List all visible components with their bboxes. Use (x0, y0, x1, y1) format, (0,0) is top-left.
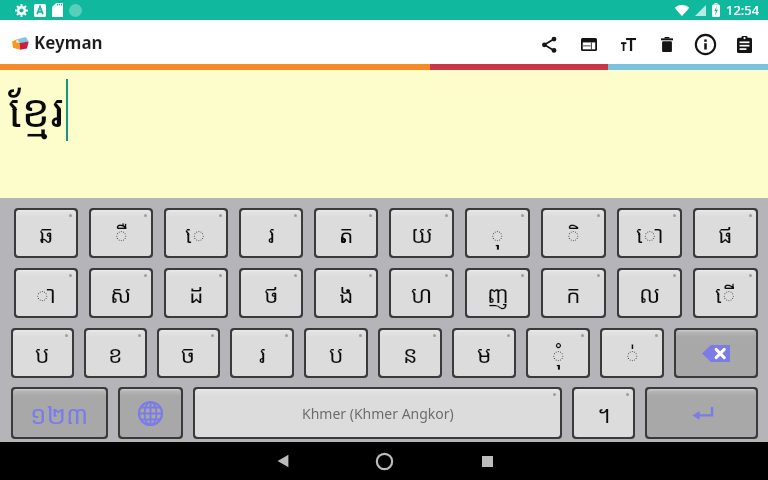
button[interactable]: រ (232, 330, 292, 376)
staticText: Keyman (34, 31, 103, 54)
staticText: Khmer (Khmer Angkor) (302, 404, 454, 423)
staticText: ម (477, 338, 492, 369)
staticText: ឺ (114, 218, 129, 249)
button[interactable]: ង (316, 270, 376, 316)
staticText: ដ (189, 278, 204, 309)
button[interactable]: ន (380, 330, 440, 376)
staticText: េី (715, 278, 737, 309)
button[interactable]: ត (316, 210, 376, 256)
button[interactable]: Back (263, 442, 303, 480)
staticText: ង (339, 278, 354, 309)
button[interactable]: រ (241, 210, 301, 256)
button[interactable]: ខ (86, 330, 145, 376)
button[interactable]: ប (13, 330, 72, 376)
button[interactable]: Clipboard (725, 22, 764, 66)
staticText: ល (639, 278, 661, 309)
button[interactable]: ោ (619, 210, 680, 256)
staticText: ស (110, 278, 132, 309)
button[interactable]: Info (686, 22, 725, 66)
staticText: ។ (597, 398, 611, 429)
button[interactable]: ១២៣ (13, 389, 106, 437)
button[interactable]: Backspace (676, 330, 756, 376)
staticText: ត (339, 218, 354, 249)
staticText: ញ (487, 278, 509, 309)
button[interactable]: Share (530, 22, 569, 66)
staticText: ុំ (551, 338, 566, 369)
button[interactable]: ឺ (91, 210, 151, 256)
button[interactable]: ។ (574, 389, 633, 437)
staticText: ១២៣ (30, 396, 89, 431)
staticText: ិ (566, 218, 581, 249)
staticText: ហ (411, 278, 433, 309)
button[interactable]: េ (166, 210, 226, 256)
button[interactable]: ិ (543, 210, 604, 256)
button[interactable]: Clear (647, 22, 686, 66)
button[interactable]: យ (391, 210, 452, 256)
staticText: ប (35, 338, 50, 369)
staticText: យ (411, 218, 433, 249)
button[interactable]: ម (454, 330, 514, 376)
button[interactable]: Text size (608, 22, 647, 66)
button[interactable]: ុំ (528, 330, 588, 376)
button[interactable]: ស (91, 270, 151, 316)
staticText: ់ (625, 338, 640, 369)
button[interactable]: ច (159, 330, 218, 376)
button[interactable]: ក (543, 270, 604, 316)
button[interactable]: Keyboard picker (569, 22, 608, 66)
staticText: ខ្មែរ (8, 78, 64, 141)
staticText: ា (35, 278, 57, 309)
button[interactable]: ហ (391, 270, 452, 316)
button[interactable]: ល (619, 270, 680, 316)
staticText: ប (329, 338, 344, 369)
button[interactable]: ឆ (16, 210, 76, 256)
button[interactable]: េី (695, 270, 756, 316)
staticText: េ (185, 218, 207, 249)
button[interactable]: ញ (467, 270, 528, 316)
staticText: ក (566, 278, 581, 309)
button[interactable]: Khmer (Khmer Angkor) (195, 389, 560, 437)
button[interactable]: Enter (647, 389, 756, 437)
staticText: ផ (718, 218, 733, 249)
button[interactable]: Home (364, 442, 404, 480)
staticText: 12:54 (726, 1, 760, 19)
staticText: ុ (490, 218, 505, 249)
button[interactable]: Recents (467, 442, 507, 480)
button[interactable]: ថ (241, 270, 301, 316)
button[interactable]: ុ (467, 210, 528, 256)
staticText: ខ (108, 338, 123, 369)
button[interactable]: ប (306, 330, 366, 376)
button[interactable]: ផ (695, 210, 756, 256)
staticText: ោ (636, 218, 664, 249)
staticText: រ (268, 218, 275, 249)
staticText: ន (403, 338, 418, 369)
staticText: ឆ (39, 218, 54, 249)
button[interactable]: ា (16, 270, 76, 316)
staticText: រ (259, 338, 266, 369)
staticText: ថ (264, 278, 279, 309)
button[interactable]: ់ (602, 330, 662, 376)
staticText: ច (181, 338, 196, 369)
button[interactable]: ដ (166, 270, 226, 316)
button[interactable]: Change keyboard (120, 389, 181, 437)
